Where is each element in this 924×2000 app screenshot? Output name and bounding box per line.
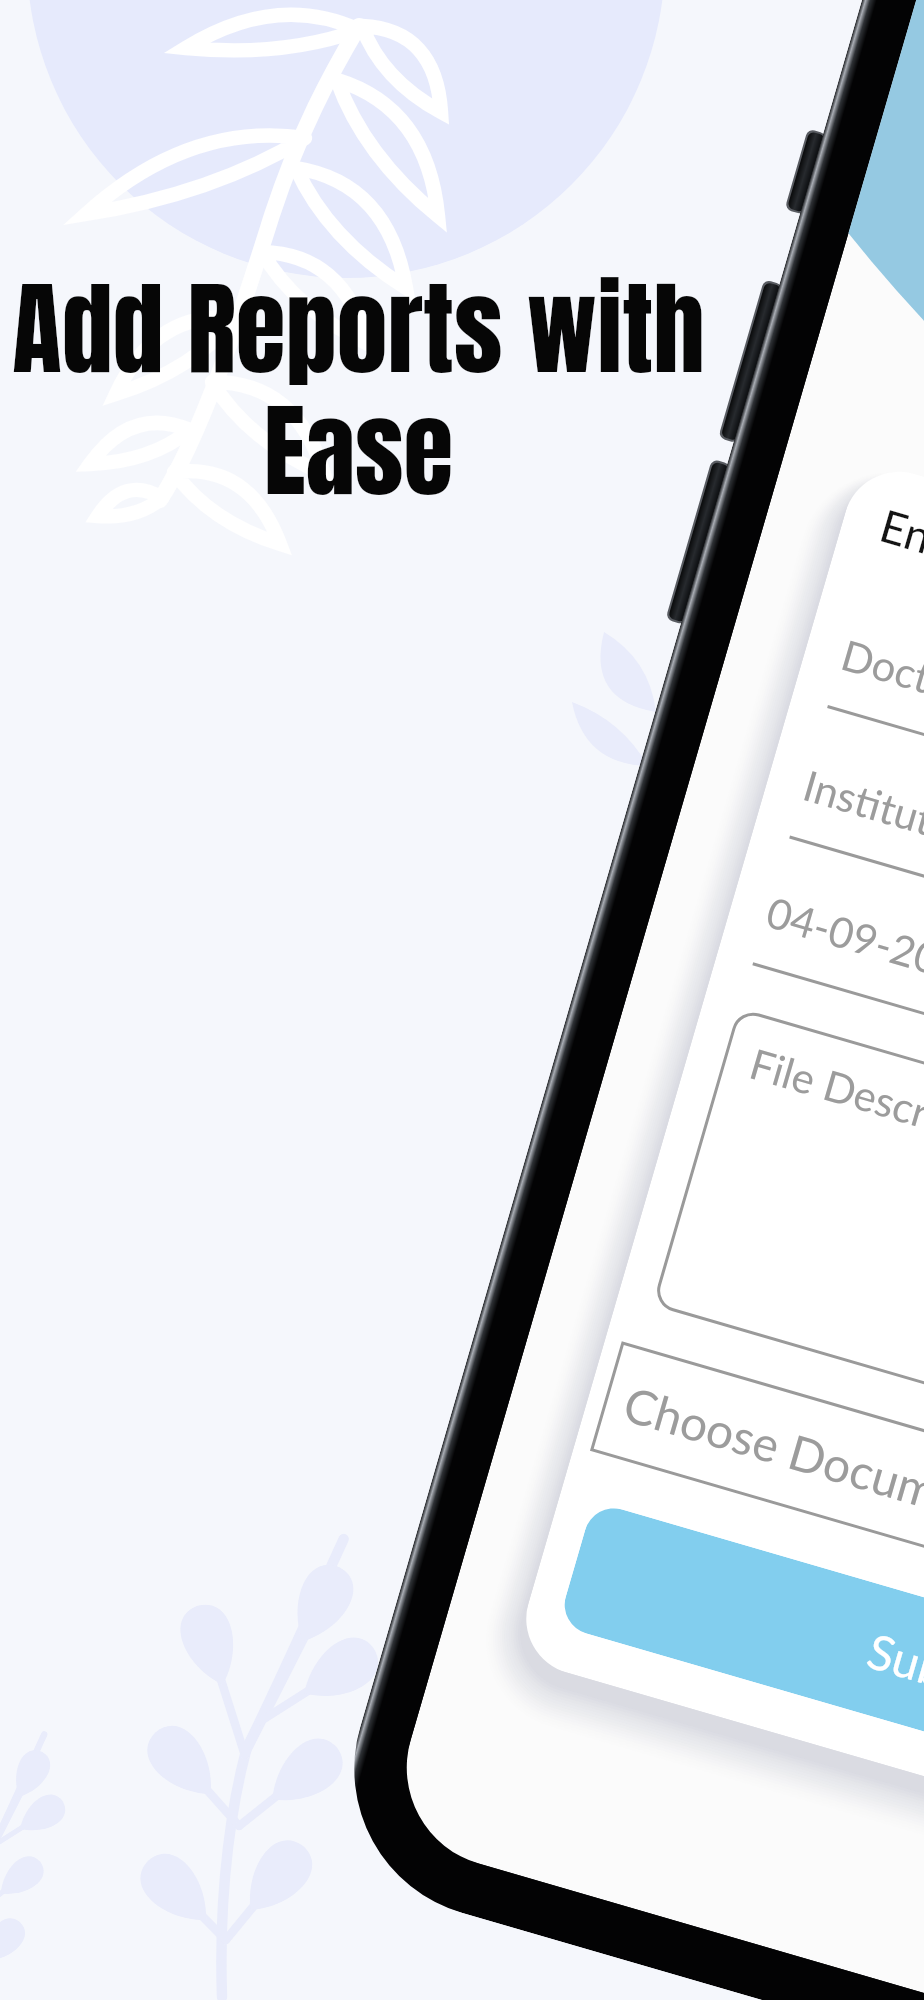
staticText: Submit bbox=[861, 1621, 924, 1718]
staticText: 04-09-2020 bbox=[761, 886, 924, 998]
button[interactable]: File Description bbox=[654, 1009, 924, 1542]
button[interactable]: Submit bbox=[557, 1501, 924, 1837]
staticText: Add Reports with Ease bbox=[0, 252, 721, 528]
staticText: File Description bbox=[744, 1038, 924, 1167]
staticText: Enter Report Details bbox=[874, 498, 924, 661]
staticText: Institution Name bbox=[798, 760, 924, 894]
button[interactable]: Choose Document bbox=[592, 1343, 924, 1699]
staticText: Doctor Name bbox=[836, 629, 924, 747]
staticText: Choose Document bbox=[617, 1374, 924, 1540]
